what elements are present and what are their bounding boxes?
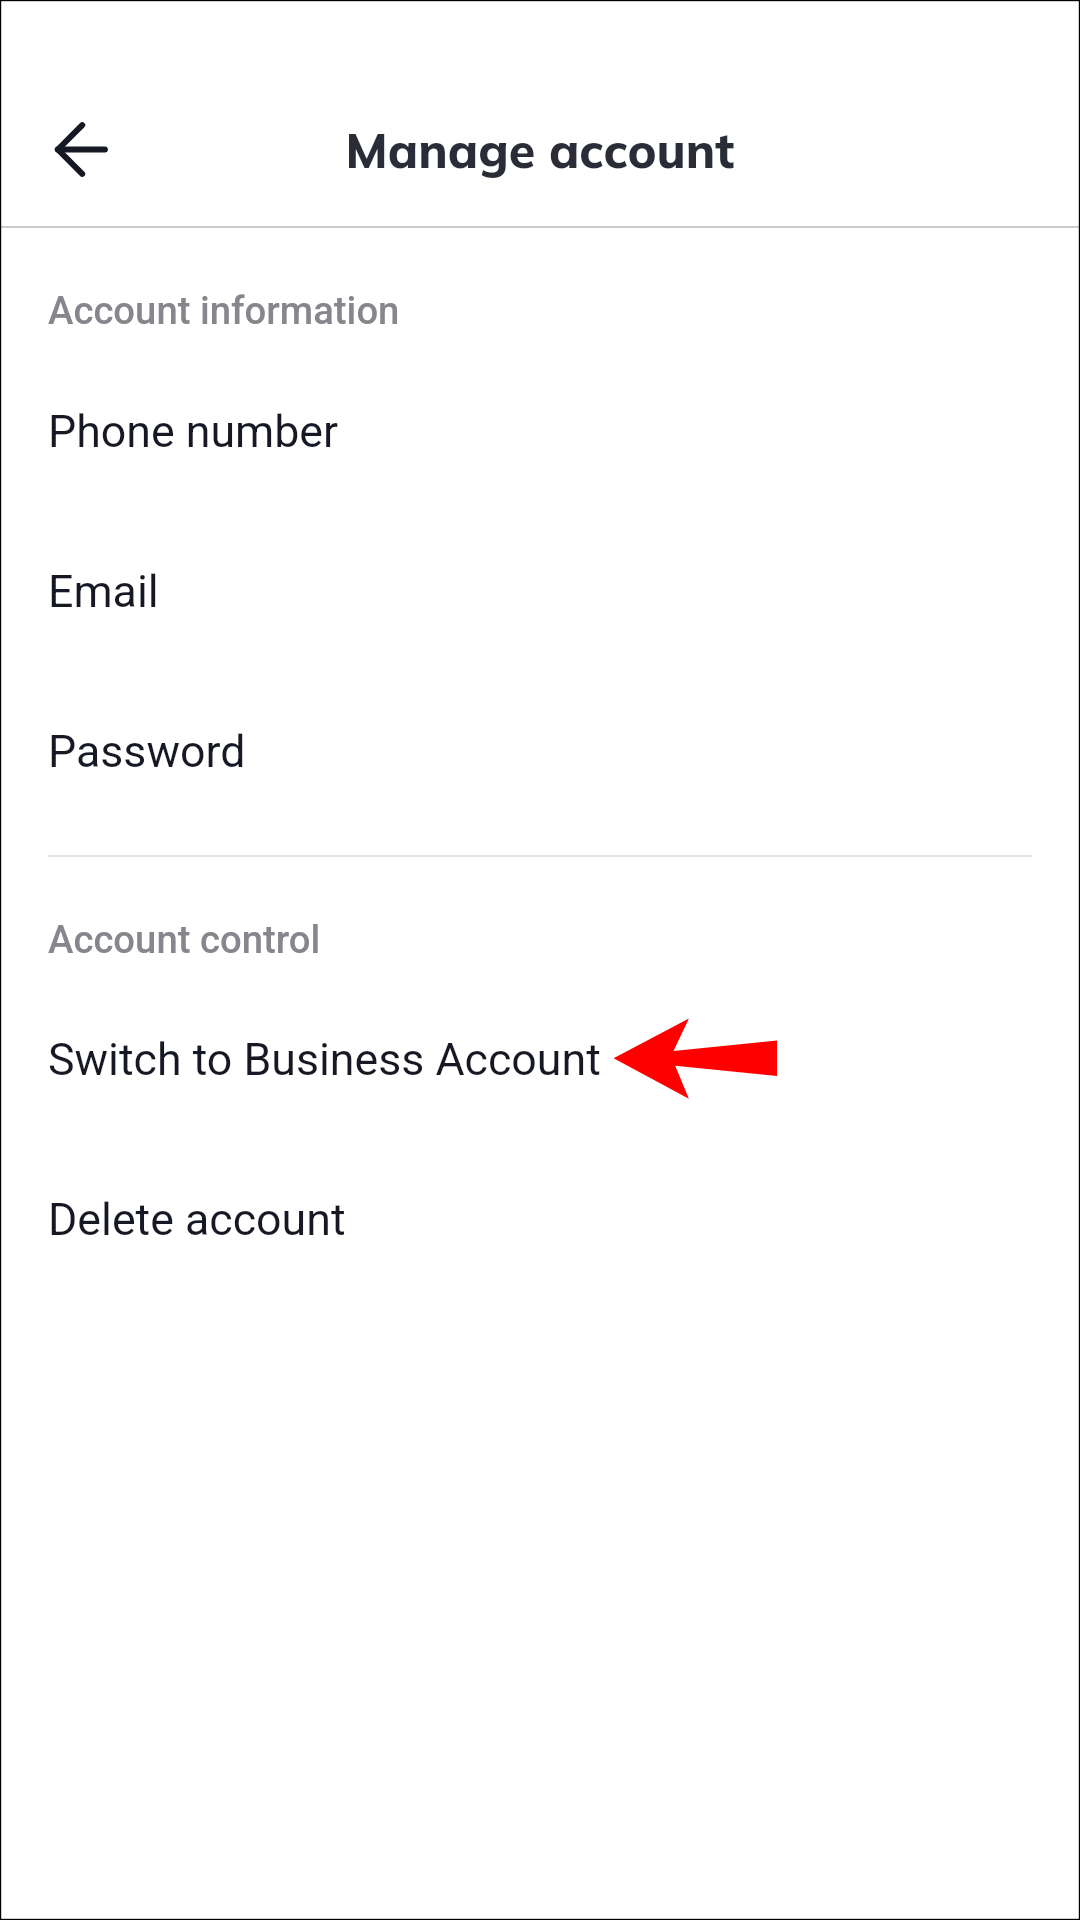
staticText: Manage account (0, 120, 1080, 180)
staticText: Password (48, 726, 246, 778)
staticText: Email (48, 566, 159, 618)
staticText: Account control (48, 917, 321, 962)
staticText: Account information (48, 288, 400, 333)
button[interactable]: Delete account (0, 1137, 1080, 1297)
staticText: Phone number (48, 406, 339, 458)
staticText: Switch to Business Account (48, 1034, 601, 1086)
button[interactable]: Email (0, 509, 1080, 669)
button[interactable]: Back (34, 102, 129, 197)
button[interactable]: Switch to Business Account (0, 977, 1080, 1137)
button[interactable]: Password (0, 669, 1080, 829)
staticText: Delete account (48, 1194, 346, 1246)
button[interactable]: Phone number (0, 349, 1080, 509)
